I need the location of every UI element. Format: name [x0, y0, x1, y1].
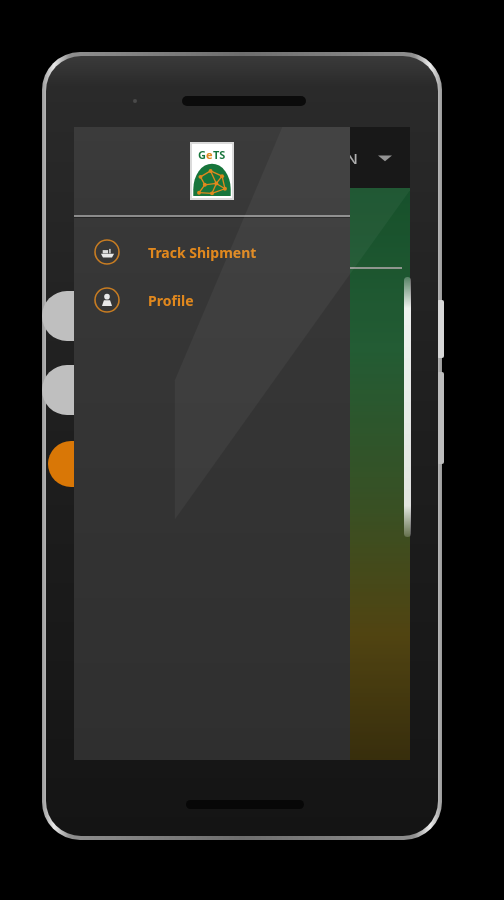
staticText: EN — [338, 148, 358, 168]
button[interactable]: Track Shipment — [74, 228, 350, 276]
button[interactable]: Select language — [376, 149, 394, 167]
button[interactable]: Profile — [74, 276, 350, 324]
button[interactable]: Expand — [42, 291, 160, 341]
staticText: Track Shipment — [148, 243, 257, 262]
staticText: TS — [213, 147, 226, 162]
staticText: NT — [88, 212, 124, 249]
button[interactable] — [48, 441, 152, 487]
staticText: e — [206, 147, 213, 162]
staticText: G — [198, 147, 206, 162]
button[interactable]: Clear — [42, 365, 160, 415]
staticText: Profile — [148, 291, 194, 310]
